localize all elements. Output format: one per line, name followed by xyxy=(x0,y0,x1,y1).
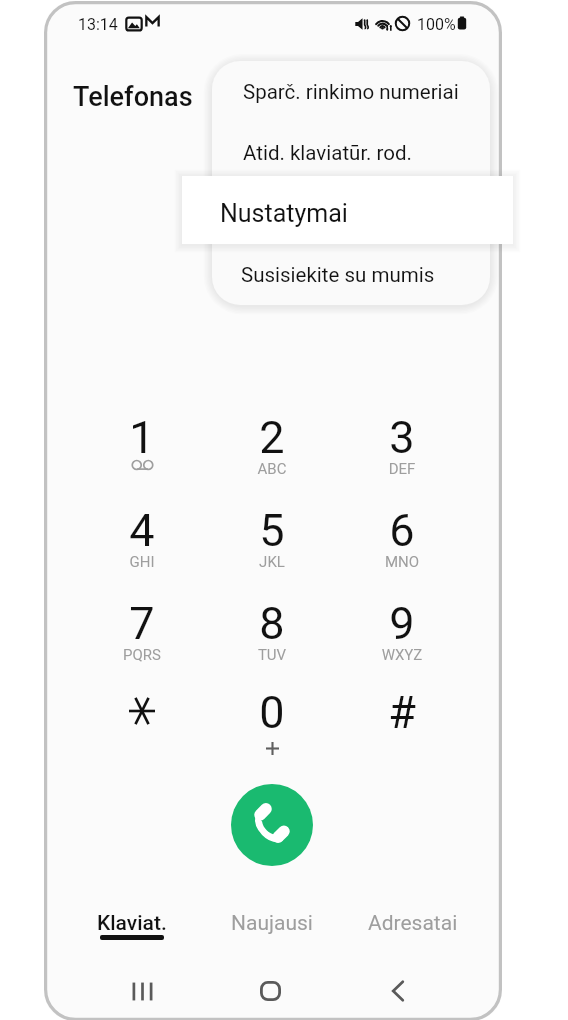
staticText: Naujausi xyxy=(231,911,313,936)
button[interactable]: 6 xyxy=(346,504,458,590)
staticText: 4 xyxy=(86,504,198,557)
button[interactable]: Back xyxy=(358,951,438,1020)
button[interactable]: 7 xyxy=(86,597,198,683)
staticText: GHI xyxy=(86,553,198,571)
staticText: MNO xyxy=(346,553,458,571)
button[interactable]: Atid. klaviatūr. rod. xyxy=(212,122,490,183)
staticText: Atid. klaviatūr. rod. xyxy=(243,141,413,165)
staticText: Sparč. rinkimo numeriai xyxy=(243,80,459,104)
staticText: PQRS xyxy=(86,646,198,664)
button[interactable]: Naujausi xyxy=(202,911,342,961)
button[interactable]: 4 xyxy=(86,504,198,590)
staticText: TUV xyxy=(216,646,328,664)
staticText: Adresatai xyxy=(368,911,458,936)
button[interactable]: Nustatymai xyxy=(182,176,513,244)
staticText: ABC xyxy=(216,460,328,478)
button[interactable]: Recent apps xyxy=(102,951,182,1020)
button[interactable]: 9 xyxy=(346,597,458,683)
button[interactable] xyxy=(86,686,198,772)
staticText: 100% xyxy=(417,15,456,34)
staticText: 13:14 xyxy=(78,15,118,34)
button[interactable]: 0 xyxy=(216,686,328,772)
button[interactable]: Sparč. rinkimo numeriai xyxy=(212,61,490,122)
button[interactable]: 3 xyxy=(346,411,458,497)
button[interactable]: 8 xyxy=(216,597,328,683)
staticText: 0 xyxy=(216,686,328,739)
button[interactable]: Call xyxy=(231,784,313,866)
button[interactable]: Home xyxy=(230,951,310,1020)
staticText: 3 xyxy=(346,411,458,464)
staticText: # xyxy=(346,686,458,739)
staticText: Susisiekite su mumis xyxy=(241,263,435,287)
staticText: Nustatymai xyxy=(243,202,348,226)
staticText: 8 xyxy=(216,597,328,650)
staticText: 5 xyxy=(216,504,328,557)
staticText: 7 xyxy=(86,597,198,650)
staticText: 2 xyxy=(216,411,328,464)
button[interactable]: Klaviat. xyxy=(62,911,202,961)
staticText: 1 xyxy=(86,411,198,464)
staticText: Klaviat. xyxy=(97,911,167,936)
button[interactable]: Adresatai xyxy=(343,911,483,961)
staticText: Nustatymai xyxy=(220,199,348,228)
button[interactable]: Susisiekite su mumis xyxy=(212,244,490,305)
staticText: Telefonas xyxy=(73,81,193,113)
staticText: 9 xyxy=(346,597,458,650)
staticText: 6 xyxy=(346,504,458,557)
staticText: WXYZ xyxy=(346,646,458,664)
staticText: DEF xyxy=(346,460,458,478)
button[interactable]: Nustatymai xyxy=(212,183,490,244)
button[interactable]: # xyxy=(346,686,458,772)
button[interactable]: 2 xyxy=(216,411,328,497)
button[interactable]: 1 xyxy=(86,411,198,497)
button[interactable]: 5 xyxy=(216,504,328,590)
staticText: JKL xyxy=(216,553,328,571)
